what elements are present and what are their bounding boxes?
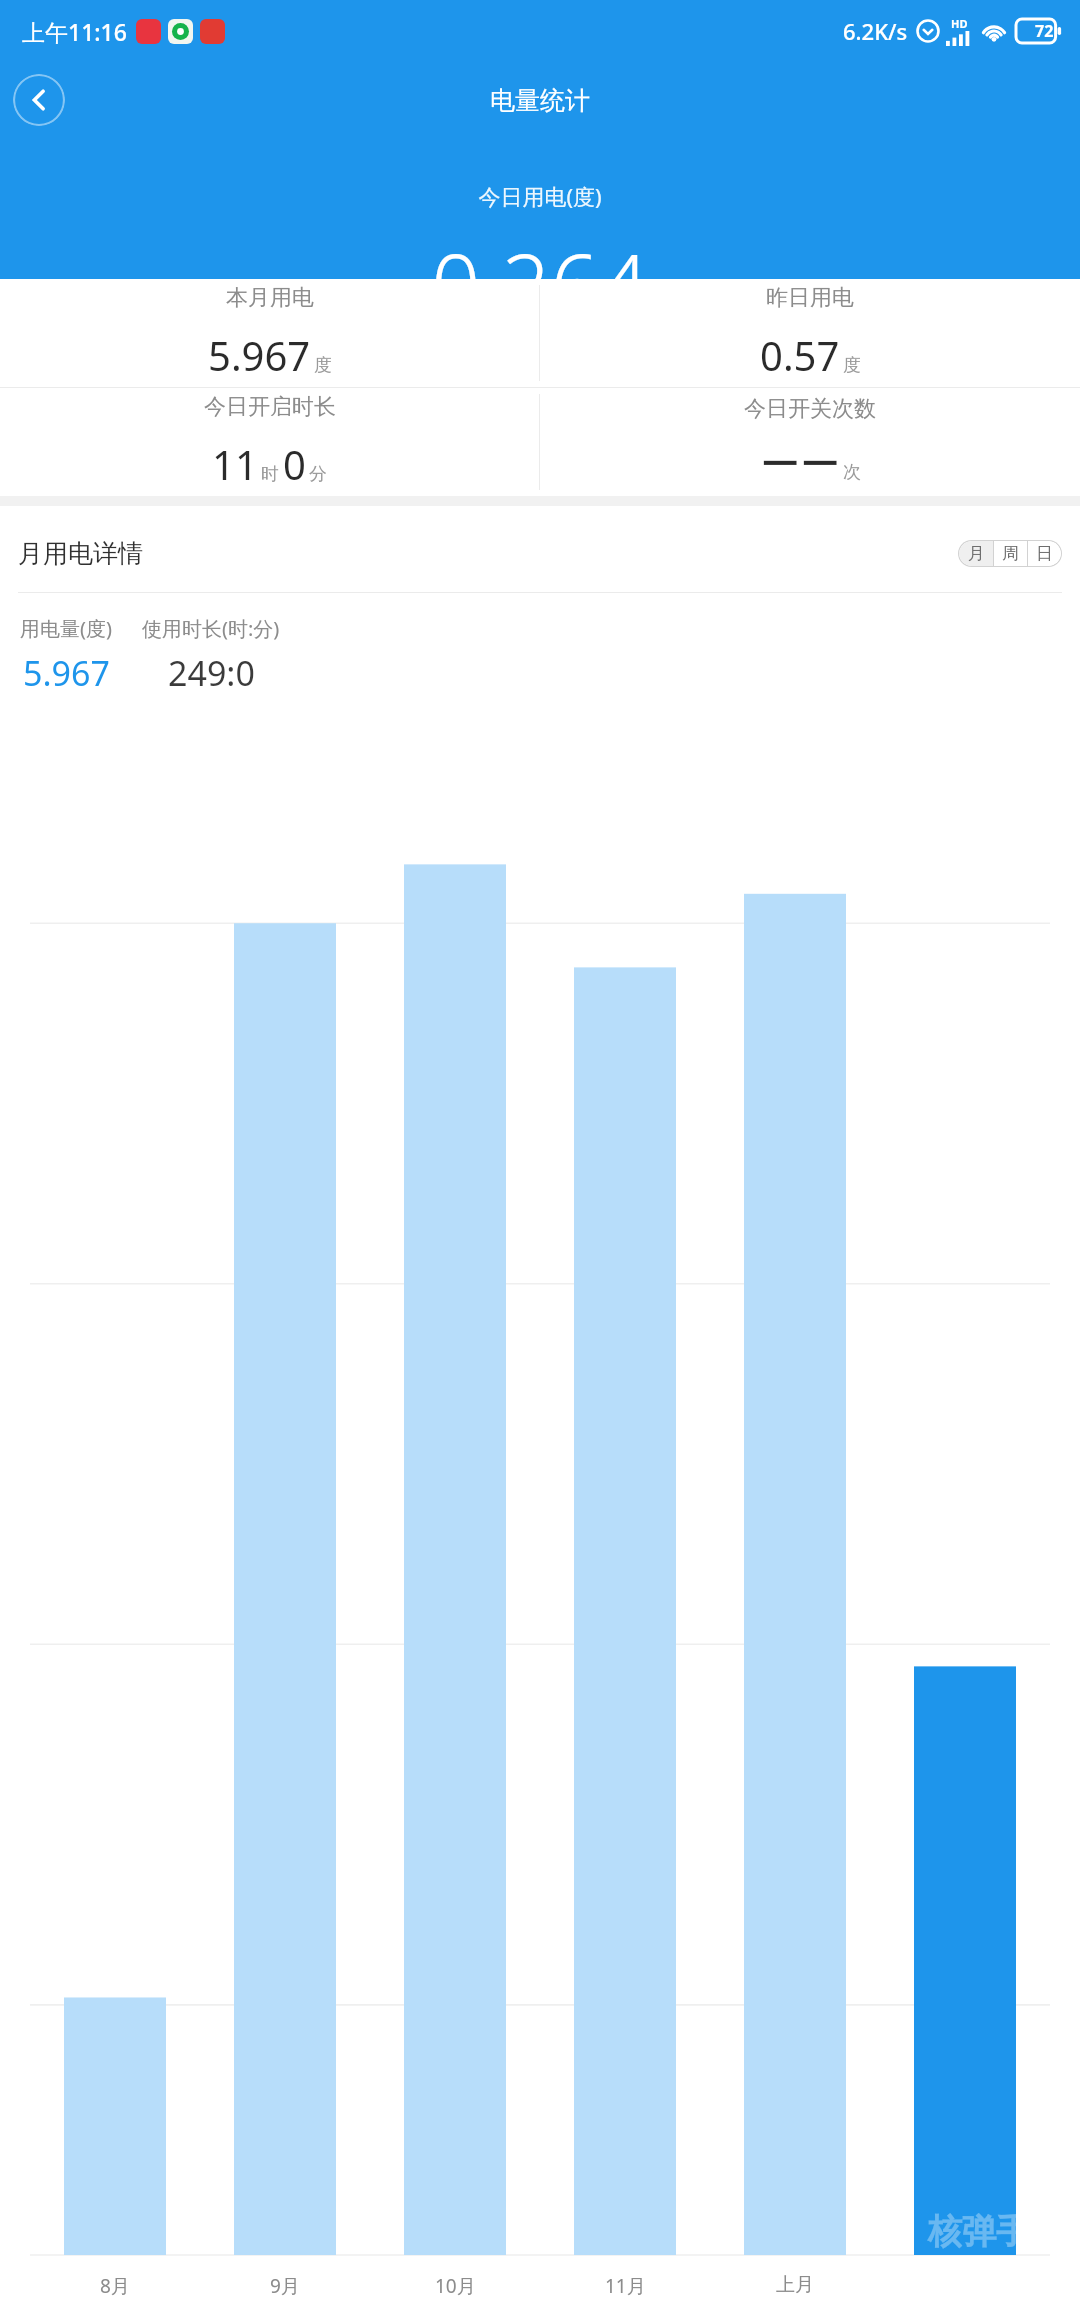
staticText: 0.57 [760,328,840,382]
staticText: 电量统计 [490,85,590,116]
staticText: 时 [261,463,279,486]
button[interactable]: 昨日用电 [540,279,1080,387]
staticText: 上月 [776,2273,814,2297]
staticText: 分 [309,463,327,486]
button[interactable]: Back [13,74,65,126]
staticText: 次 [843,461,861,484]
staticText: 9月 [270,2273,300,2299]
button[interactable]: 周 [993,541,1027,566]
button[interactable]: 今日开关次数 [540,388,1080,496]
staticText: 今日用电(度) [0,181,1080,211]
staticText: 日 [1036,543,1053,564]
staticText: 核弹手机 [928,2210,1064,2253]
staticText: 本月用电 [226,284,314,312]
staticText: 用电量(度) [20,615,112,642]
staticText: 度 [314,354,332,377]
button[interactable]: 本月用电 [0,279,539,387]
staticText: 月用电详情 [18,538,143,569]
staticText: 使用时长(时:分) [142,615,280,642]
staticText: 72 [1035,20,1054,42]
staticText: 0.264 [0,225,1080,279]
staticText: 0 [283,437,306,491]
staticText: 上午11:16 [22,16,127,47]
staticText: 度 [843,354,861,377]
staticText: 11 [212,437,258,491]
button[interactable]: 月 [959,541,993,566]
staticText: 周 [1002,543,1019,564]
staticText: 昨日用电 [766,284,854,312]
staticText: 8月 [100,2273,130,2299]
staticText: 今日开启时长 [204,393,336,421]
staticText: 5.967 [208,328,311,382]
staticText: 月 [968,543,985,564]
staticText: 249:0 [168,650,255,696]
button[interactable]: 日 [1027,541,1061,566]
staticText: 11月 [605,2273,646,2299]
staticText: HD [951,16,968,31]
staticText: 今日开关次数 [744,395,876,423]
staticText: 6.2K/s [843,16,908,46]
staticText: 10月 [435,2273,476,2299]
staticText: ーー [760,439,840,489]
staticText: 5.967 [23,650,110,696]
button[interactable]: 今日开启时长 [0,388,539,496]
